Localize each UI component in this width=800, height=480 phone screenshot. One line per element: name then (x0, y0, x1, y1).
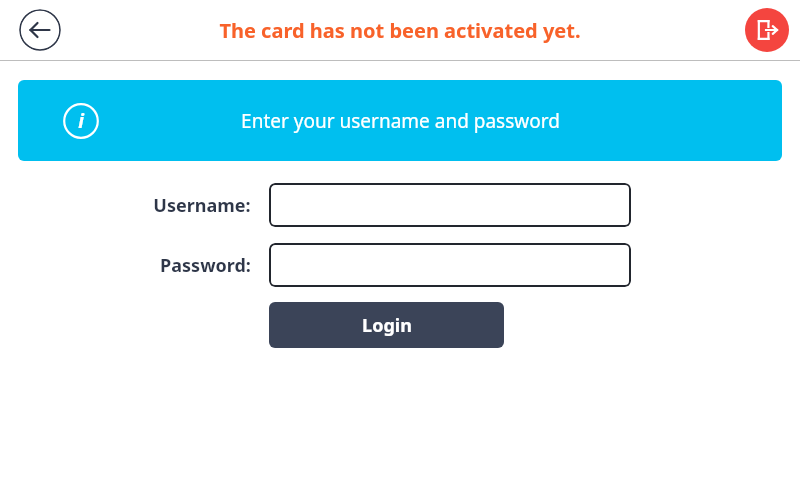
button[interactable]: Username input (269, 183, 631, 227)
button[interactable]: Password input (269, 243, 631, 287)
staticText: Password: (160, 253, 251, 278)
button[interactable]: Login (269, 302, 504, 348)
button[interactable]: Logout (745, 8, 789, 52)
staticText: Username: (153, 193, 251, 218)
staticText: i (78, 108, 84, 134)
staticText: Login (362, 313, 412, 338)
staticText: Enter your username and password (241, 108, 560, 134)
button[interactable]: Back (19, 9, 61, 51)
staticText: The card has not been activated yet. (219, 17, 581, 44)
